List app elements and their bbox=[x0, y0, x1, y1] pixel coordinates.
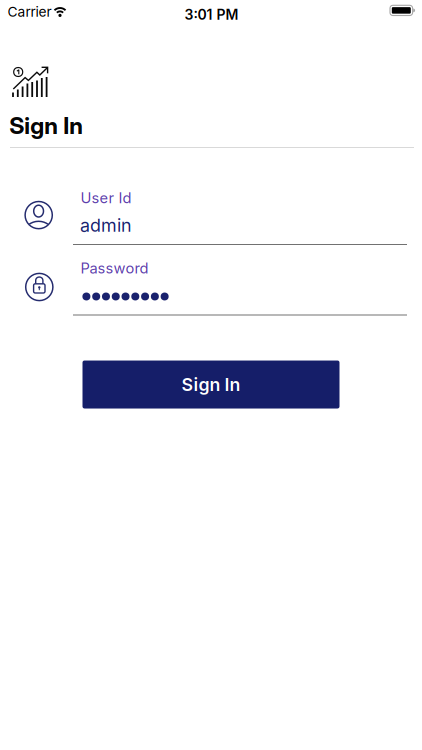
staticText: Sign In bbox=[181, 374, 240, 395]
staticText: Password bbox=[80, 259, 148, 277]
staticText: Carrier bbox=[7, 3, 51, 20]
button[interactable]: Password bbox=[24, 259, 408, 317]
staticText: 3:01 PM bbox=[184, 6, 238, 23]
staticText: User Id bbox=[80, 189, 131, 207]
button[interactable]: User Id bbox=[24, 188, 408, 246]
button[interactable]: Sign In bbox=[82, 360, 339, 408]
staticText: Sign In bbox=[9, 111, 83, 140]
staticText: admin bbox=[80, 214, 132, 236]
